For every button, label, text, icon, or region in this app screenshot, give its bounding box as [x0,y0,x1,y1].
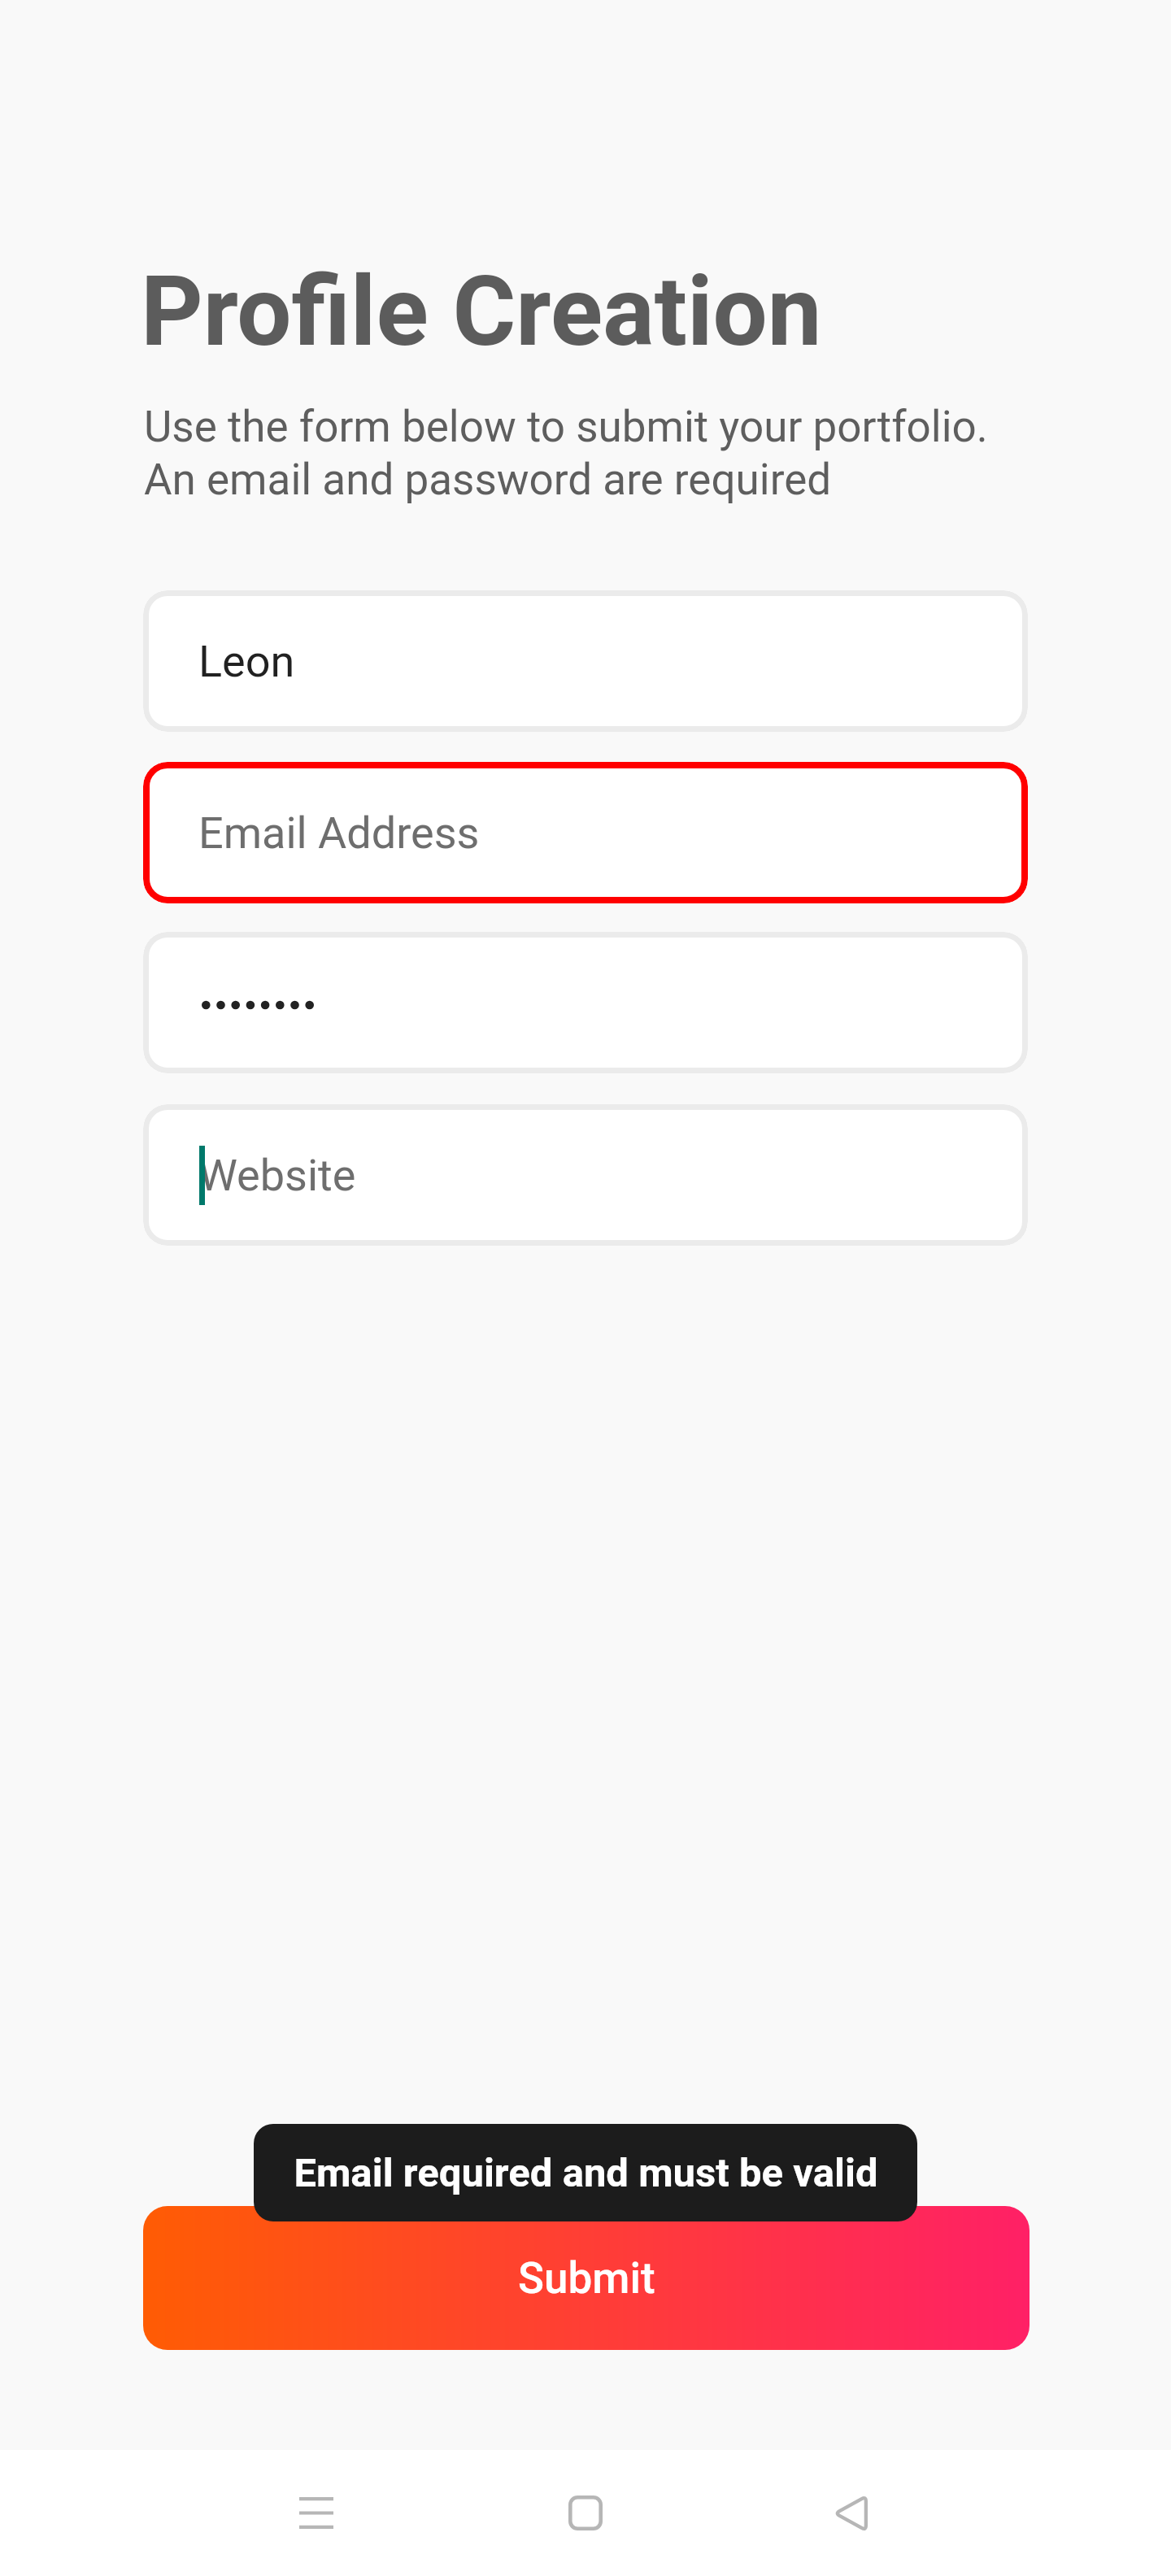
button[interactable]: Email Address [143,762,1028,903]
staticText: Leon [198,636,295,687]
button[interactable]: Name [143,590,1028,732]
button[interactable]: Password [143,932,1028,1073]
button[interactable]: Back [777,2450,924,2576]
staticText: Email required and must be valid [294,2150,878,2196]
staticText: Website [198,1150,356,1201]
button[interactable]: Website [143,1104,1028,1246]
button[interactable]: Submit [143,2206,1030,2350]
staticText: Email Address [198,807,480,859]
staticText: Use the form below to submit your portfo… [144,402,988,505]
staticText: Submit [518,2253,655,2304]
button[interactable]: Recent apps [243,2450,390,2576]
staticText: Profile Creation [141,255,822,368]
button[interactable]: Home [512,2450,659,2576]
